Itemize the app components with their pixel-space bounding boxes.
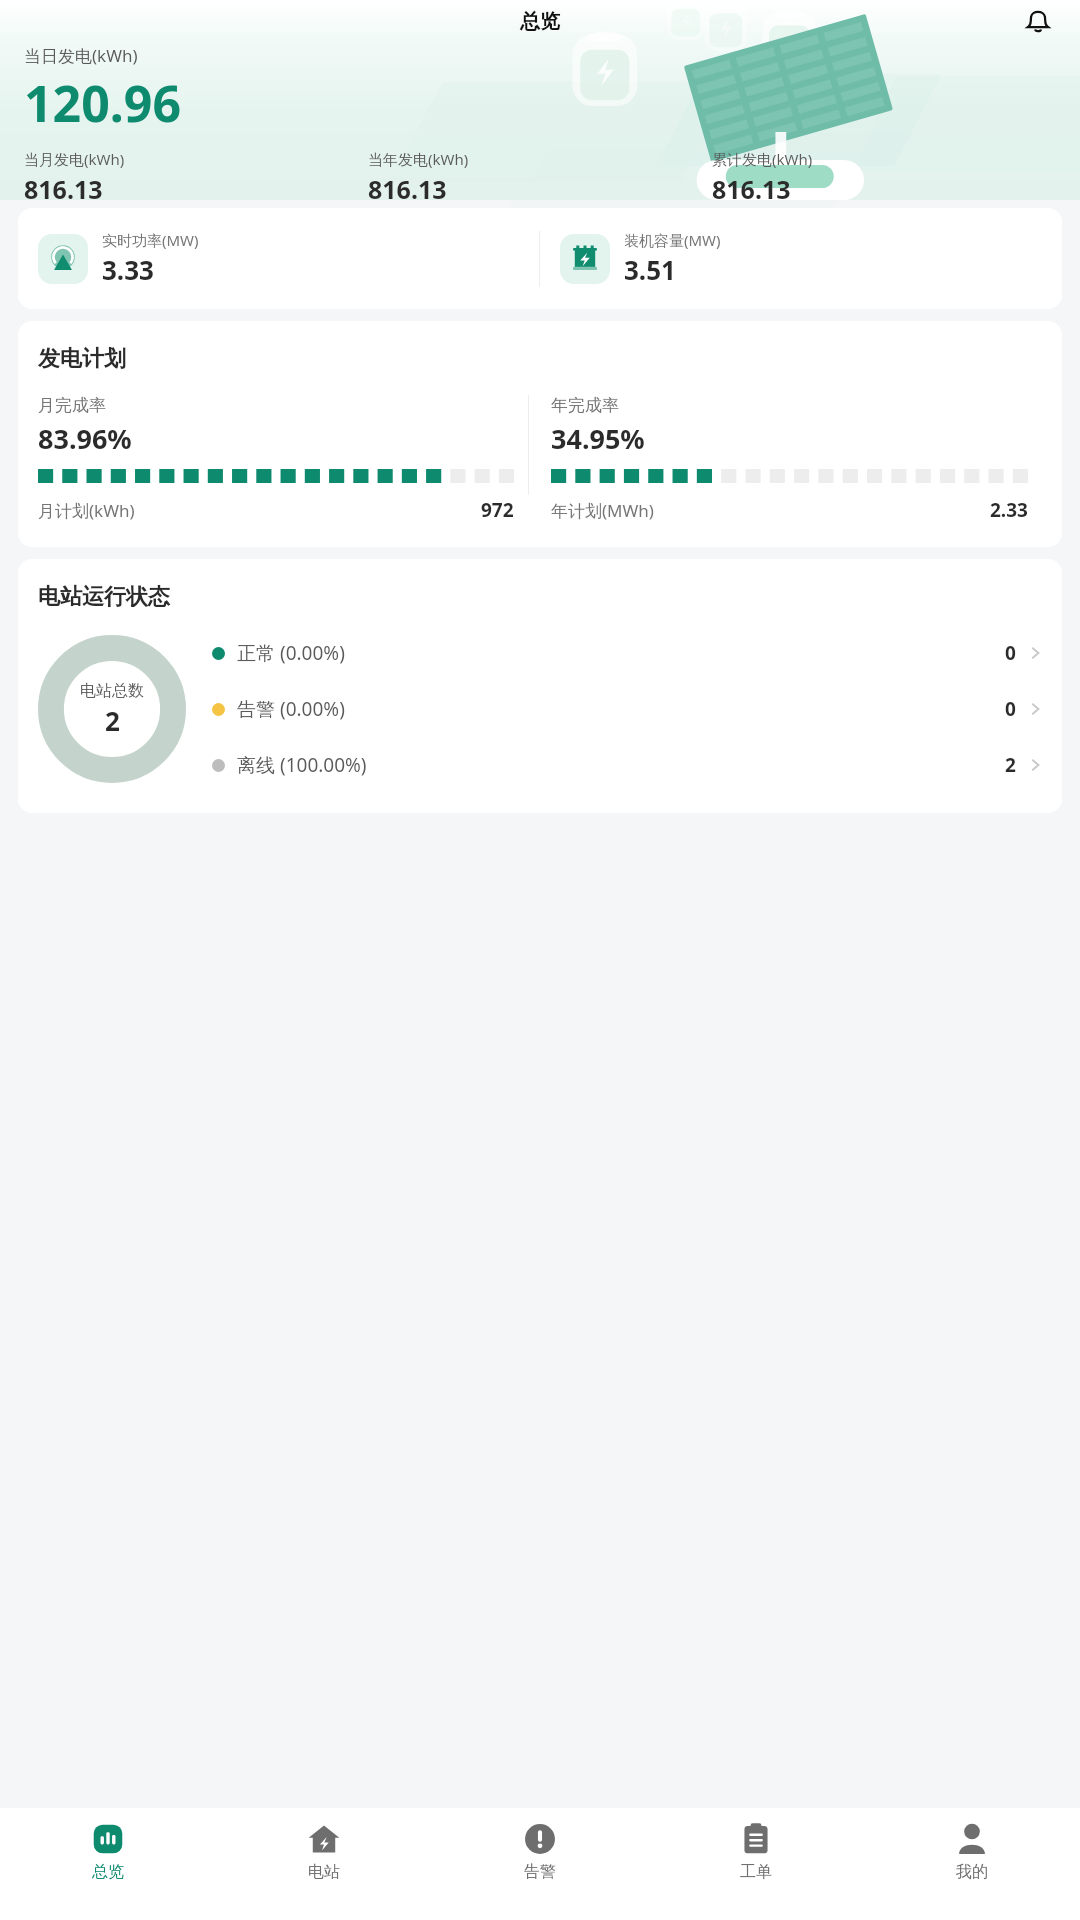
staticText: 总览	[92, 1862, 124, 1882]
button[interactable]: 离线 (100.00%)	[212, 752, 1042, 778]
staticText: 年完成率	[551, 395, 619, 416]
staticText: 实时功率(MW)	[102, 230, 199, 250]
staticText: 120.96	[24, 69, 182, 137]
button[interactable]: 正常 (0.00%)	[212, 640, 1042, 666]
staticText: 2	[105, 703, 120, 738]
staticText: 83.96%	[38, 420, 132, 457]
staticText: 累计发电(kWh)	[712, 149, 813, 169]
staticText: 月计划(kWh)	[38, 499, 135, 522]
button[interactable]: 工单	[648, 1808, 864, 1920]
staticText: 当月发电(kWh)	[24, 149, 125, 169]
staticText: 816.13	[712, 172, 791, 200]
staticText: 离线 (100.00%)	[237, 752, 367, 778]
staticText: 当日发电(kWh)	[24, 44, 138, 67]
staticText: 电站	[308, 1862, 340, 1882]
staticText: 34.95%	[551, 420, 645, 457]
staticText: 我的	[956, 1862, 988, 1882]
staticText: 当年发电(kWh)	[368, 149, 469, 169]
staticText: 装机容量(MW)	[624, 230, 721, 250]
staticText: 816.13	[368, 172, 447, 200]
button[interactable]: 总览	[0, 1808, 216, 1920]
button[interactable]: 我的	[864, 1808, 1080, 1920]
button[interactable]: Notifications	[1016, 0, 1060, 42]
button[interactable]: 告警	[432, 1808, 648, 1920]
staticText: 发电计划	[38, 345, 126, 373]
staticText: 月完成率	[38, 395, 106, 416]
staticText: 972	[481, 497, 514, 523]
button[interactable]: 装机容量(MW)	[540, 230, 1062, 287]
button[interactable]: 电站	[216, 1808, 432, 1920]
staticText: 3.33	[102, 252, 154, 287]
staticText: 总览	[520, 9, 560, 34]
staticText: 0	[1005, 640, 1016, 666]
button[interactable]: 实时功率(MW)	[18, 230, 539, 287]
staticText: 816.13	[24, 172, 103, 200]
staticText: 电站运行状态	[38, 583, 170, 611]
staticText: 电站总数	[80, 681, 144, 701]
staticText: 告警	[524, 1862, 556, 1882]
staticText: 告警 (0.00%)	[237, 696, 345, 722]
staticText: 年计划(MWh)	[551, 499, 654, 522]
staticText: 2.33	[990, 497, 1028, 523]
staticText: 0	[1005, 696, 1016, 722]
staticText: 正常 (0.00%)	[237, 640, 345, 666]
staticText: 3.51	[624, 252, 676, 287]
staticText: 2	[1005, 752, 1016, 778]
staticText: 工单	[740, 1862, 772, 1882]
button[interactable]: 告警 (0.00%)	[212, 696, 1042, 722]
